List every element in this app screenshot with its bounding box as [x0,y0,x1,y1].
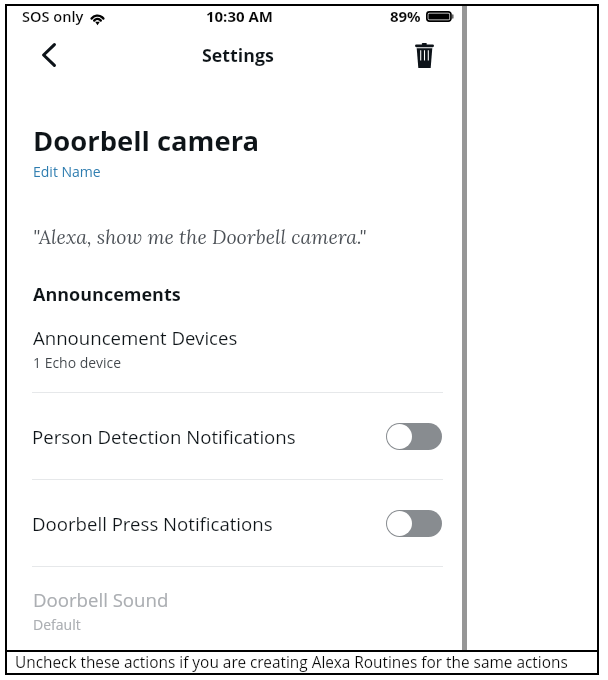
staticText: Doorbell camera [33,122,260,159]
staticText: SOS only [22,6,84,26]
staticText: 89% [390,6,421,26]
button[interactable]: Delete [402,33,446,77]
button[interactable]: Doorbell Press Notifications [32,480,442,566]
staticText: "Alexa, show me the Doorbell camera." [33,224,367,249]
staticText: Settings [202,43,274,67]
button[interactable]: Edit Name [31,160,103,183]
button[interactable]: Person Detection Notifications [32,393,442,479]
staticText: Person Detection Notifications [32,424,296,449]
staticText: Announcement Devices [33,325,238,350]
staticText: Announcements [33,282,181,307]
staticText: Doorbell Sound [33,587,169,612]
staticText: 10:30 AM [206,6,273,26]
staticText: 1 Echo device [33,353,122,372]
button[interactable]: Announcement Devices [32,322,443,384]
staticText: Edit Name [33,162,101,181]
button[interactable]: Back [27,33,71,77]
staticText: Doorbell Press Notifications [32,511,273,536]
staticText: Default [33,615,81,634]
staticText: Uncheck these actions if you are creatin… [15,652,568,673]
